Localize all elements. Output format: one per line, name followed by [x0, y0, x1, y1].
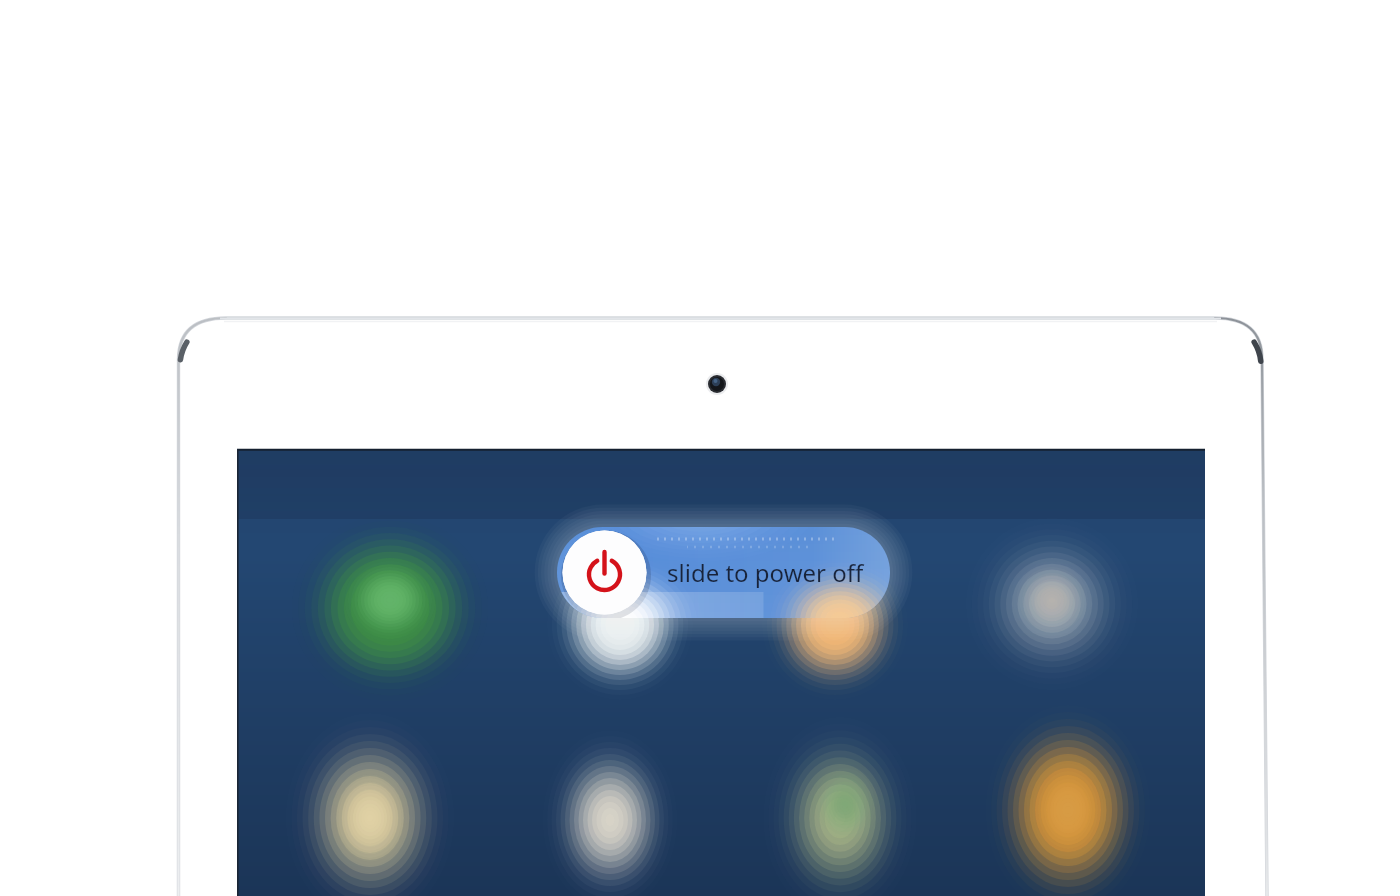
button[interactable]: Slide to power off [0, 0, 1400, 896]
